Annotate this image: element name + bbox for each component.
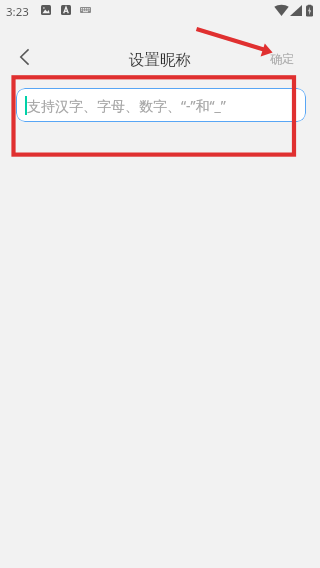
- button[interactable]: Back: [6, 39, 42, 75]
- staticText: 设置昵称: [0, 50, 320, 70]
- button[interactable]: 支持汉字、字母、数字、“-”和“_”: [16, 88, 306, 122]
- button[interactable]: 确定: [261, 43, 303, 73]
- staticText: 3:23: [6, 4, 29, 20]
- staticText: 支持汉字、字母、数字、“-”和“_”: [27, 96, 226, 115]
- staticText: 确定: [270, 51, 294, 66]
